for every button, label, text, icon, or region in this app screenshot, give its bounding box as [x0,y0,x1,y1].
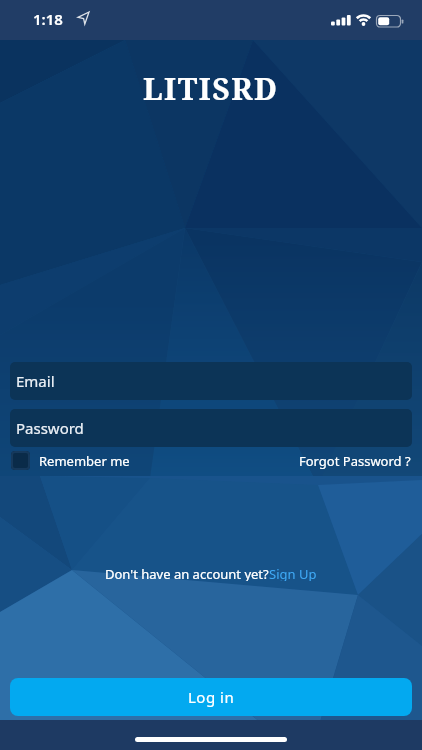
button[interactable]: Password [10,409,412,447]
staticText: LITISRD [143,68,279,109]
button[interactable]: Email [10,362,412,400]
staticText: Remember me [39,452,130,470]
staticText: Don't have an account yet? [105,565,269,581]
staticText: Password [16,418,84,438]
staticText: Log in [188,687,235,707]
staticText: Sign Up [269,565,317,581]
button[interactable]: Sign Up [269,565,317,581]
staticText: Forgot Password ? [299,452,411,470]
staticText: 1:18 [33,9,63,29]
staticText: Email [16,371,55,391]
button[interactable]: Log in [10,678,412,716]
button[interactable]: Remember me [11,451,130,470]
button[interactable]: Forgot Password ? [299,452,411,470]
